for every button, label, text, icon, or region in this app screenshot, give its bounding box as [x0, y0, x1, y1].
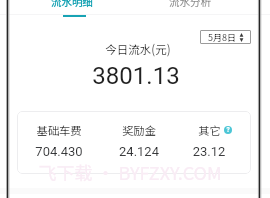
staticText: 流水明细 [47, 0, 97, 9]
staticText: 5月8日 [208, 31, 236, 44]
staticText: 今日流水(元) [38, 41, 238, 58]
staticText: 3801.13 [36, 62, 236, 90]
button[interactable]: 流水明细 [47, 0, 97, 11]
button[interactable]: 5月8日 [200, 30, 251, 44]
button[interactable]: 其它 [164, 111, 254, 174]
button[interactable]: 流水分析 [165, 0, 215, 11]
staticText: 704.430 [14, 144, 104, 159]
button[interactable]: 基础车费 [14, 111, 104, 174]
staticText: 基础车费 [36, 122, 82, 138]
staticText: 23.12 [164, 144, 254, 159]
other: Help [224, 126, 232, 134]
staticText: ? [226, 126, 230, 134]
button[interactable]: 奖励金 [94, 111, 184, 174]
staticText: 飞下载 • BYFZXY.COM [38, 159, 222, 185]
staticText: 其它 [198, 122, 221, 138]
staticText: 奖励金 [122, 122, 156, 138]
staticText: 24.124 [94, 144, 184, 159]
staticText: 流水分析 [165, 0, 215, 9]
